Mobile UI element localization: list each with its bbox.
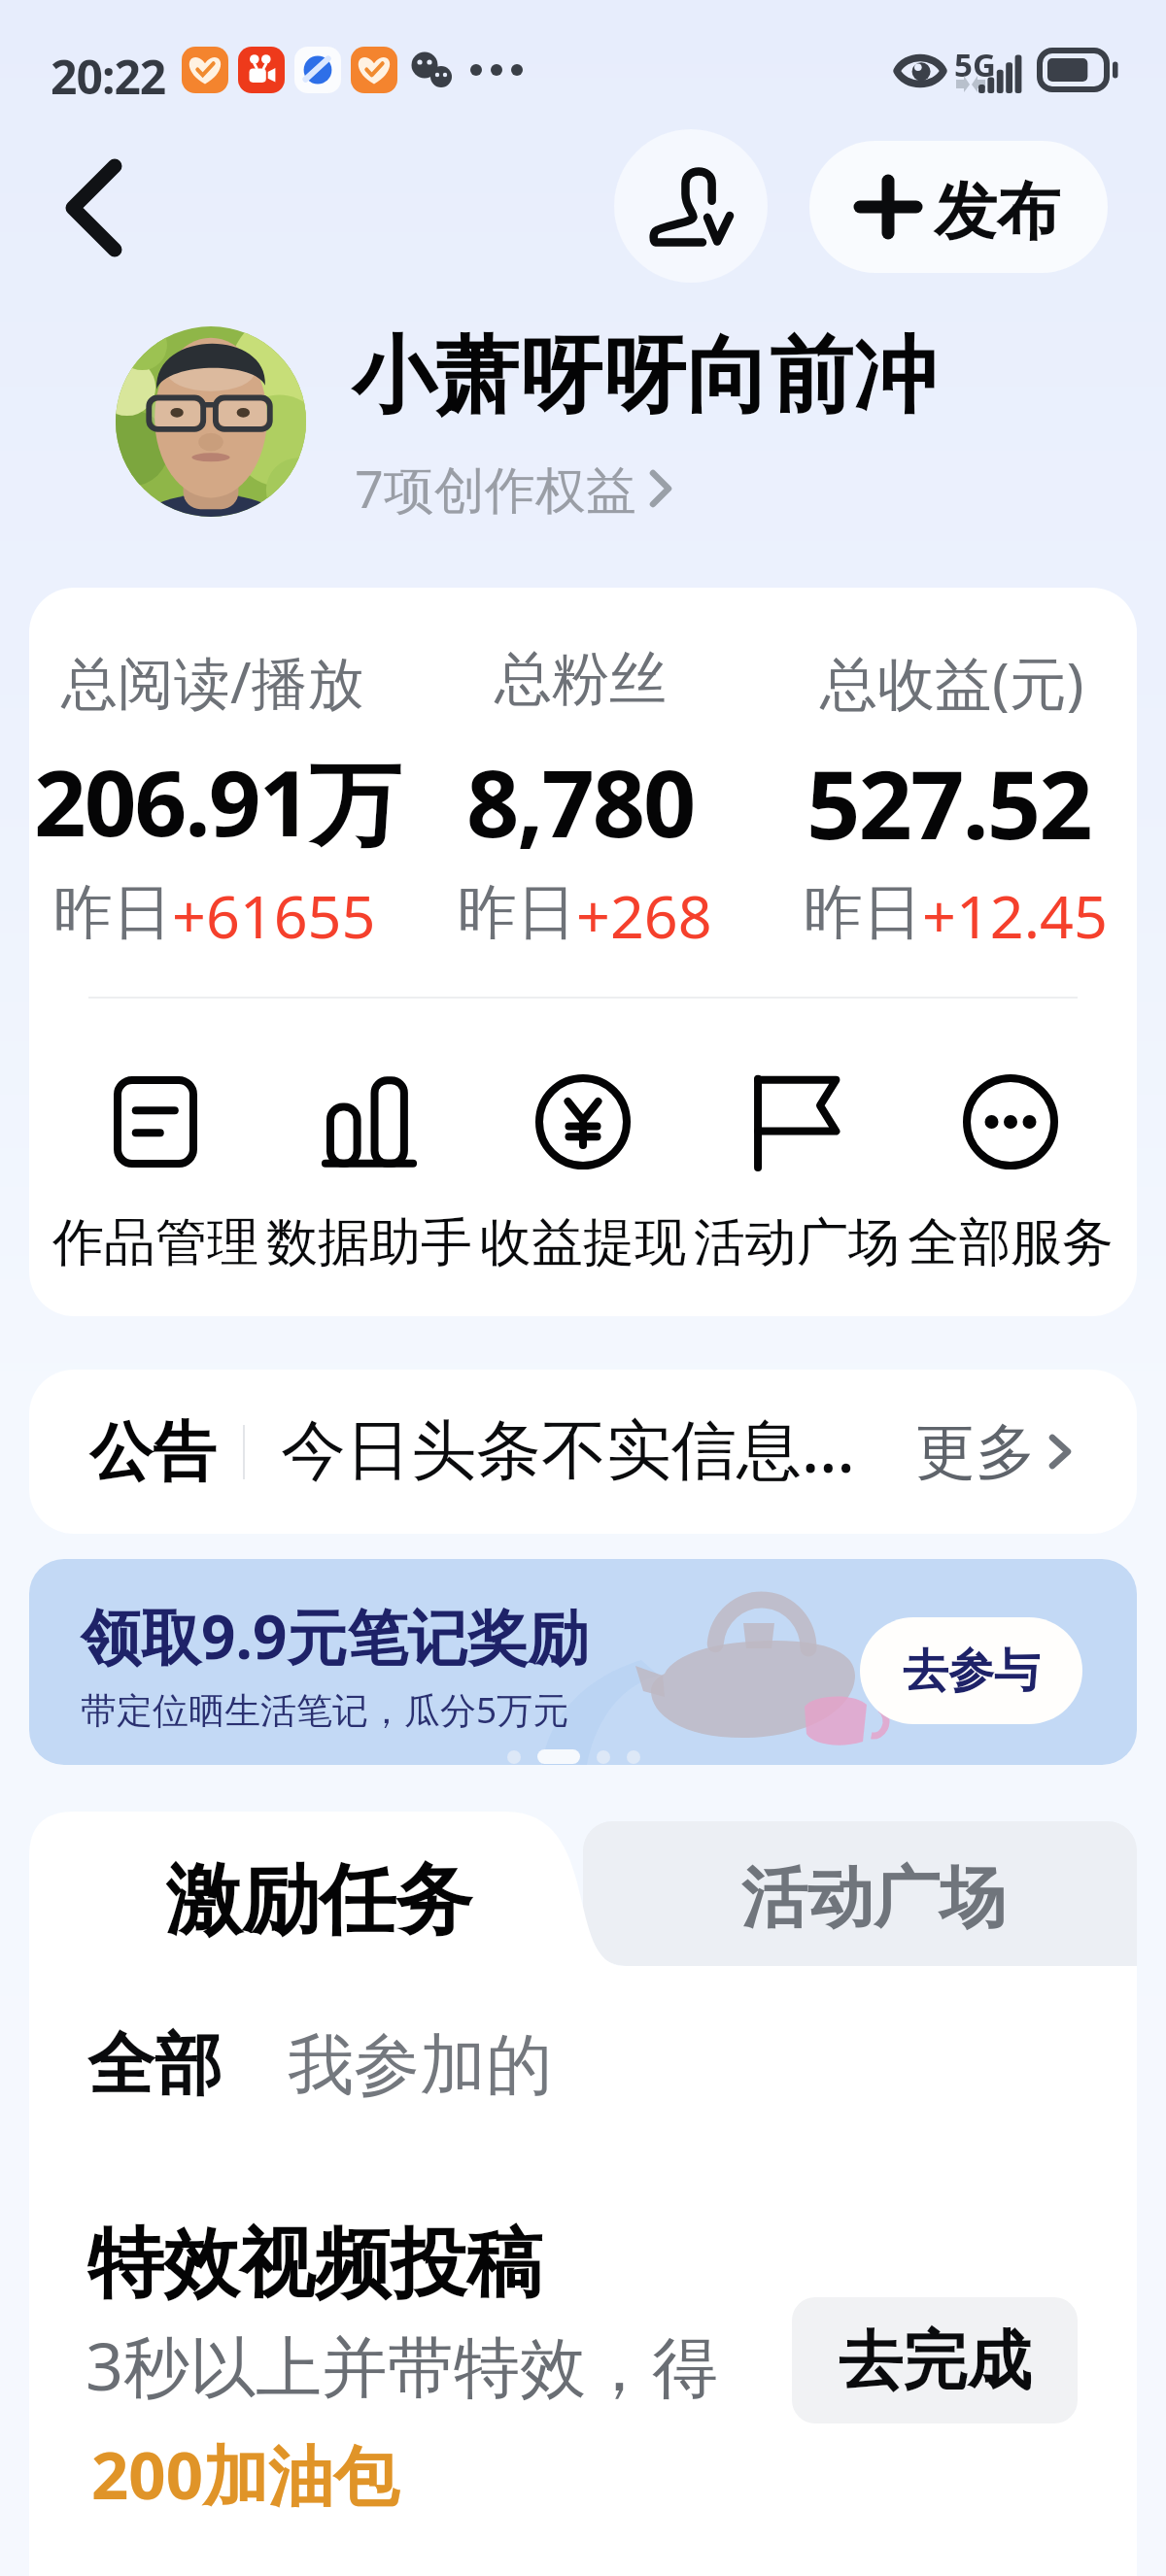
staticText: 206.91万 bbox=[34, 739, 399, 864]
button[interactable]: 全部服务 bbox=[904, 1073, 1117, 1275]
staticText: 数据助手 bbox=[266, 1210, 472, 1275]
staticText: 收益提现 bbox=[480, 1210, 686, 1275]
button[interactable]: 公告 bbox=[29, 1370, 1137, 1534]
staticText: 去参与 bbox=[903, 1643, 1040, 1700]
button[interactable]: 去参与 bbox=[860, 1617, 1082, 1724]
staticText: 特效视频投稿 bbox=[87, 2217, 542, 2312]
staticText: 发布 bbox=[934, 172, 1060, 252]
staticText: 今日头条不实信息... bbox=[281, 1403, 908, 1492]
button[interactable]: 激励任务 bbox=[29, 1823, 630, 1979]
staticText: 带定位晒生活笔记，瓜分5万元 bbox=[81, 1684, 569, 1734]
staticText: 昨日 bbox=[458, 875, 576, 950]
staticText: 总收益(元) bbox=[820, 643, 1084, 722]
button[interactable]: 发布 bbox=[809, 141, 1108, 273]
button[interactable]: 活动广场 bbox=[583, 1821, 1137, 1966]
staticText: 全部服务 bbox=[908, 1210, 1114, 1275]
staticText: 7项创作权益 bbox=[355, 454, 636, 523]
staticText: 活动广场 bbox=[741, 1857, 1006, 1941]
button[interactable]: 全部 bbox=[87, 2023, 222, 2108]
button[interactable]: 作品管理 bbox=[49, 1073, 262, 1275]
staticText: 8,780 bbox=[466, 738, 695, 864]
staticText: 小萧呀呀向前冲 bbox=[352, 323, 937, 428]
button[interactable]: Avatar bbox=[116, 326, 306, 517]
staticText: 公告 bbox=[89, 1412, 216, 1492]
staticText: 20:22 bbox=[51, 45, 166, 95]
staticText: 总粉丝 bbox=[495, 643, 667, 715]
button[interactable]: 活动广场 bbox=[690, 1073, 904, 1275]
button[interactable]: Back bbox=[45, 159, 142, 256]
staticText: 3秒以上并带特效，得 bbox=[86, 2320, 718, 2410]
staticText: 总阅读/播放 bbox=[61, 643, 364, 720]
staticText: 激励任务 bbox=[165, 1852, 472, 1949]
staticText: +12.45 bbox=[922, 875, 1108, 956]
button[interactable]: 数据助手 bbox=[262, 1073, 476, 1275]
button[interactable]: 7项创作权益 bbox=[355, 454, 671, 523]
button[interactable]: Find friends bbox=[614, 129, 768, 283]
staticText: 更多 bbox=[915, 1414, 1036, 1490]
staticText: 昨日 bbox=[53, 875, 172, 950]
staticText: 200加油包 bbox=[91, 2429, 398, 2519]
staticText: +61655 bbox=[172, 875, 376, 956]
button[interactable]: 收益提现 bbox=[476, 1073, 690, 1275]
staticText: 活动广场 bbox=[694, 1210, 900, 1275]
staticText: +268 bbox=[576, 875, 712, 956]
staticText: 去完成 bbox=[839, 2321, 1031, 2401]
staticText: 领取9.9元笔记奖励 bbox=[81, 1595, 589, 1678]
button[interactable]: 去完成 bbox=[792, 2297, 1078, 2423]
staticText: 昨日 bbox=[804, 875, 922, 950]
staticText: 作品管理 bbox=[52, 1210, 258, 1275]
button[interactable]: 领取9.9元笔记奖励 bbox=[29, 1559, 1137, 1765]
button[interactable]: 我参加的 bbox=[288, 2024, 552, 2108]
staticText: 5G bbox=[954, 43, 996, 86]
staticText: 527.52 bbox=[806, 738, 1091, 866]
